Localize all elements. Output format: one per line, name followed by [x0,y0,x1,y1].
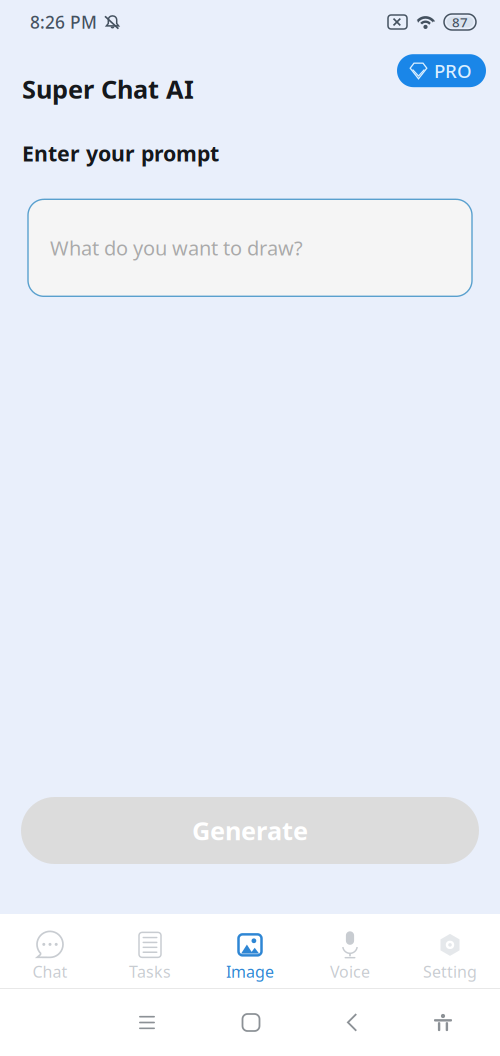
button[interactable]: Tasks [100,914,200,988]
staticText: Generate [192,814,308,847]
button[interactable]: Accessibility [411,989,475,1056]
staticText: 8:26 PM [30,10,97,33]
button[interactable]: What do you want to draw? [28,199,472,296]
staticText: PRO [434,58,472,83]
button[interactable]: Recent apps [115,989,179,1056]
staticText: Voice [330,961,370,982]
button[interactable]: Chat [0,914,100,988]
button[interactable]: Generate [21,797,479,864]
staticText: 87 [452,13,468,31]
staticText: Tasks [129,961,171,982]
staticText: Enter your prompt [22,139,219,167]
button[interactable]: Image [200,914,300,988]
staticText: Image [226,961,274,982]
staticText: Super Chat AI [22,72,194,106]
staticText: Chat [32,961,67,982]
button[interactable]: Back [319,989,383,1056]
button[interactable]: Voice [300,914,400,988]
button[interactable]: PRO [397,54,486,87]
staticText: Setting [423,961,477,982]
button[interactable]: Setting [400,914,500,988]
staticText: What do you want to draw? [50,235,303,261]
button[interactable]: Home [219,989,283,1056]
